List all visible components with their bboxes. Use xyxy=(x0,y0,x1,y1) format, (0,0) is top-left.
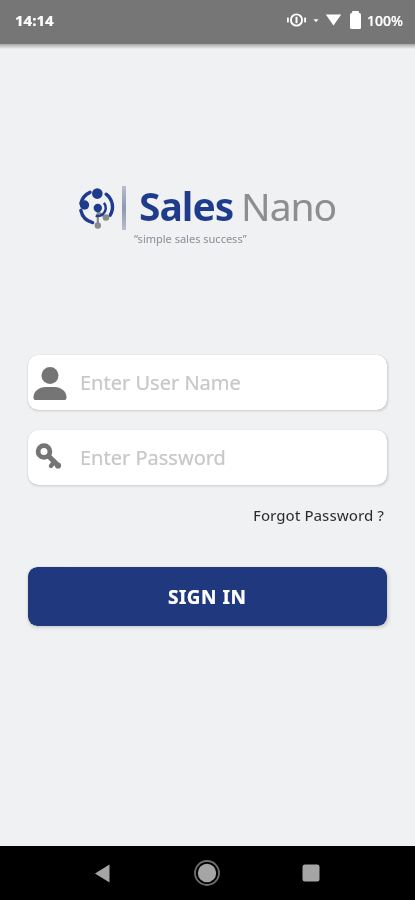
staticText: Nano xyxy=(241,179,337,232)
button[interactable] xyxy=(259,846,363,900)
button[interactable]: Forgot Password ? xyxy=(253,505,384,525)
staticText: SIGN IN xyxy=(168,584,247,610)
staticText: 14:14 xyxy=(15,10,54,30)
button[interactable]: SIGN IN xyxy=(28,567,387,626)
button[interactable]: Enter User Name xyxy=(28,355,387,410)
staticText: Enter User Name xyxy=(80,369,241,396)
staticText: Enter Password xyxy=(80,444,226,471)
button[interactable]: Enter Password xyxy=(28,430,387,485)
staticText: 100% xyxy=(367,11,403,30)
button[interactable] xyxy=(51,846,155,900)
staticText: Sales xyxy=(139,179,234,232)
staticText: “simple sales success” xyxy=(134,231,247,246)
button[interactable] xyxy=(155,846,259,900)
